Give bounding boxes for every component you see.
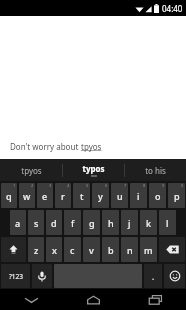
button[interactable]: o [149, 183, 166, 208]
staticText: 8 [143, 183, 146, 188]
button[interactable]: ?123 [1, 264, 30, 288]
staticText: n [127, 244, 133, 256]
staticText: b [108, 244, 114, 256]
button[interactable]: d [46, 210, 62, 235]
button[interactable]: w [19, 183, 35, 208]
button[interactable]: p [168, 183, 185, 208]
staticText: 1 [13, 183, 16, 188]
staticText: m [144, 244, 153, 256]
staticText: o [155, 190, 161, 202]
button[interactable]: m [140, 237, 157, 262]
button[interactable]: x [46, 237, 62, 262]
staticText: h [108, 217, 114, 229]
button[interactable]: Hide keyboard [0, 289, 62, 310]
staticText: y [98, 190, 103, 202]
staticText: g [89, 217, 95, 229]
staticText: ?123 [9, 272, 23, 281]
staticText: s [34, 217, 39, 229]
button[interactable]: Emoji [164, 264, 185, 288]
staticText: 0 [181, 183, 184, 188]
staticText: c [70, 244, 75, 256]
staticText: tpyos [81, 141, 102, 152]
staticText: v [89, 244, 94, 256]
staticText: w [23, 190, 31, 202]
button[interactable]: Backspace [159, 237, 185, 262]
button[interactable]: f [64, 210, 81, 235]
button[interactable]: . [144, 264, 162, 288]
staticText: j [128, 217, 131, 229]
button[interactable]: c [64, 237, 81, 262]
staticText: a [15, 217, 21, 229]
staticText: p [174, 190, 180, 202]
button[interactable]: Shift [1, 237, 26, 262]
button[interactable]: i [130, 183, 147, 208]
button[interactable]: y [92, 183, 109, 208]
button[interactable]: s [28, 210, 44, 235]
button[interactable]: q [1, 183, 17, 208]
staticText: Don't worry about [10, 141, 81, 152]
staticText: 4 [67, 183, 70, 188]
button[interactable]: typos [63, 159, 124, 181]
button[interactable]: b [102, 237, 119, 262]
button[interactable]: z [28, 237, 44, 262]
staticText: l [166, 217, 169, 229]
button[interactable]: l [159, 210, 176, 235]
staticText: 3 [49, 183, 52, 188]
staticText: e [42, 190, 48, 202]
button[interactable]: tpyos [0, 159, 62, 181]
staticText: x [52, 244, 57, 256]
button[interactable]: Voice input [32, 264, 52, 288]
staticText: 7 [124, 183, 127, 188]
button[interactable]: k [140, 210, 157, 235]
button[interactable]: n [121, 237, 138, 262]
staticText: q [6, 190, 12, 202]
button[interactable]: r [55, 183, 71, 208]
button[interactable]: j [121, 210, 138, 235]
staticText: typos [82, 163, 105, 174]
staticText: . [152, 271, 155, 282]
button[interactable]: a [10, 210, 26, 235]
staticText: d [51, 217, 57, 229]
staticText: 04:40 [162, 3, 183, 14]
button[interactable]: t [73, 183, 90, 208]
staticText: 2 [31, 183, 34, 188]
staticText: 9 [162, 183, 165, 188]
button[interactable]: u [111, 183, 128, 208]
button[interactable]: h [102, 210, 119, 235]
staticText: 5 [86, 183, 89, 188]
staticText: r [61, 190, 65, 202]
staticText: i [137, 190, 140, 202]
staticText: k [146, 217, 152, 229]
button[interactable]: e [37, 183, 53, 208]
staticText: tpyos [21, 165, 42, 176]
button[interactable]: to his [125, 159, 186, 181]
staticText: z [34, 244, 39, 256]
button[interactable]: Home [62, 289, 124, 310]
staticText: u [117, 190, 123, 202]
button[interactable]: g [83, 210, 100, 235]
button[interactable]: Recent apps [124, 289, 186, 310]
staticText: f [71, 217, 75, 229]
staticText: t [80, 190, 84, 202]
staticText: 6 [105, 183, 108, 188]
staticText: to his [145, 165, 166, 176]
button[interactable]: v [83, 237, 100, 262]
